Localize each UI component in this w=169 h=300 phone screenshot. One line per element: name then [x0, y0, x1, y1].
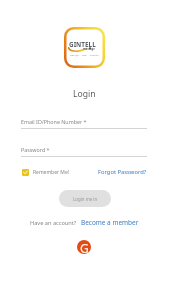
staticText: Email ID/Phone Number *: [21, 118, 87, 125]
button[interactable]: Remember Me!: [22, 169, 70, 176]
staticText: Login: [73, 88, 96, 100]
staticText: massage: [83, 47, 95, 51]
staticText: Password *: [21, 146, 50, 153]
staticText: Remember Me!: [33, 169, 70, 176]
staticText: Login me in: [73, 196, 98, 202]
staticText: G: [80, 240, 89, 254]
staticText: Have an account?: [30, 219, 77, 227]
staticText: GINTELL: [69, 40, 96, 49]
staticText: HEALTH · LIFE · LUXURY: [70, 53, 99, 56]
button[interactable]: Forgot Password?: [98, 168, 147, 176]
button[interactable]: Become a member: [81, 218, 139, 227]
button[interactable]: Login me in: [59, 190, 111, 207]
button[interactable]: Sign in with Google: [77, 240, 91, 254]
